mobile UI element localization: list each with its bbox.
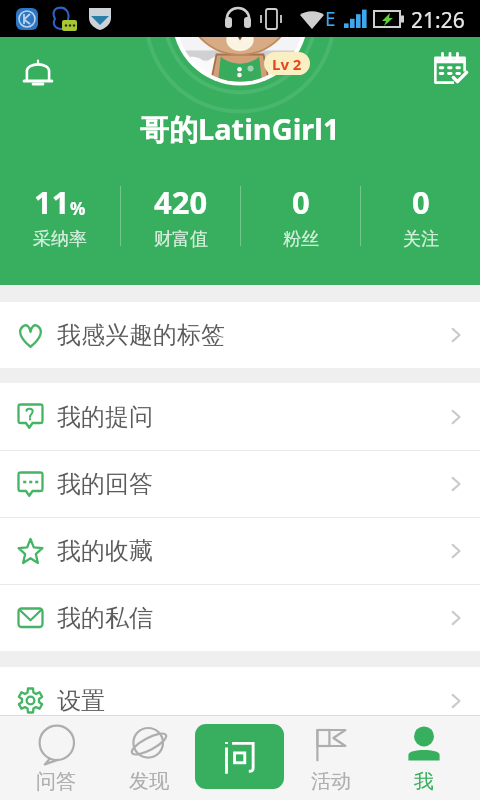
staticText: E: [325, 6, 336, 32]
staticText: 粉丝: [283, 228, 319, 251]
button[interactable]: 我: [377, 715, 470, 800]
button[interactable]: Check in calendar: [428, 46, 472, 90]
button[interactable]: 0: [361, 181, 480, 251]
staticText: 发现: [129, 769, 169, 794]
staticText: 我的提问: [57, 402, 153, 432]
staticText: 关注: [403, 228, 439, 251]
staticText: 我的收藏: [57, 536, 153, 566]
button[interactable]: Ask a question: [195, 724, 284, 789]
button[interactable]: 我的收藏: [0, 518, 480, 584]
staticText: Lv 2: [272, 54, 302, 74]
staticText: 420: [154, 181, 208, 223]
staticText: 财富值: [154, 228, 208, 251]
staticText: 0: [292, 181, 310, 223]
button[interactable]: 发现: [102, 715, 195, 800]
staticText: 采纳率: [33, 228, 87, 251]
button[interactable]: 设置: [0, 667, 480, 715]
staticText: 问答: [36, 769, 76, 794]
staticText: 我的私信: [57, 603, 153, 633]
staticText: 活动: [311, 769, 351, 794]
button[interactable]: Lv 2: [264, 52, 310, 75]
button[interactable]: 我感兴趣的标签: [0, 302, 480, 368]
staticText: %: [70, 197, 86, 220]
button[interactable]: 我的回答: [0, 451, 480, 517]
staticText: 我感兴趣的标签: [57, 320, 225, 350]
staticText: 我的回答: [57, 469, 153, 499]
button[interactable]: 活动: [284, 715, 377, 800]
button[interactable]: 问答: [10, 715, 102, 800]
staticText: 哥的LatinGirl1: [140, 109, 340, 149]
button[interactable]: 420: [121, 181, 240, 251]
staticText: 我: [414, 769, 434, 794]
button[interactable]: Notifications: [16, 50, 60, 94]
staticText: 0: [412, 181, 430, 223]
button[interactable]: 0: [241, 181, 360, 251]
staticText: 设置: [57, 686, 105, 715]
button[interactable]: 11: [0, 181, 120, 251]
button[interactable]: 我的提问: [0, 383, 480, 450]
staticText: 11: [34, 181, 70, 223]
button[interactable]: 我的私信: [0, 585, 480, 651]
staticText: 21:26: [411, 6, 465, 35]
